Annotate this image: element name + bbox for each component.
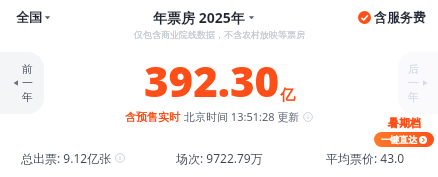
staticText: 暑期档 <box>388 116 421 130</box>
button[interactable]: 一键直达 <box>374 132 434 147</box>
button[interactable]: 前一年 <box>0 52 44 114</box>
staticText: 年票房 2025年 <box>153 8 245 27</box>
button[interactable]: 年票房 2025年 <box>153 8 255 27</box>
button[interactable]: 含服务费 <box>358 9 426 25</box>
staticText: 年 <box>408 90 419 104</box>
staticText: 一 <box>408 76 419 90</box>
staticText: 仅包含商业院线数据，不含农村放映等票房 <box>134 29 305 40</box>
staticText: 全国 <box>16 9 42 25</box>
staticText: 一键直达 <box>381 134 417 145</box>
staticText: 后 <box>408 62 419 76</box>
staticText: 含预售实时 <box>125 110 180 124</box>
staticText: 亿 <box>280 86 295 105</box>
button[interactable]: 后一年 <box>398 52 438 114</box>
staticText: 北京时间 13:51:28 更新 <box>184 109 300 124</box>
staticText: 392.30 <box>144 52 280 109</box>
staticText: 一 <box>22 76 33 90</box>
button[interactable]: 总出票: 9.12亿张 <box>0 150 146 166</box>
staticText: 总出票: 9.12亿张 <box>21 150 112 166</box>
button[interactable]: 全国 <box>16 9 51 25</box>
staticText: 前 <box>22 62 33 76</box>
staticText: 平均票价: 43.0 <box>326 150 405 166</box>
staticText: 年 <box>22 90 33 104</box>
staticText: 场次: 9722.79万 <box>176 150 263 166</box>
staticText: 含服务费 <box>374 9 426 25</box>
